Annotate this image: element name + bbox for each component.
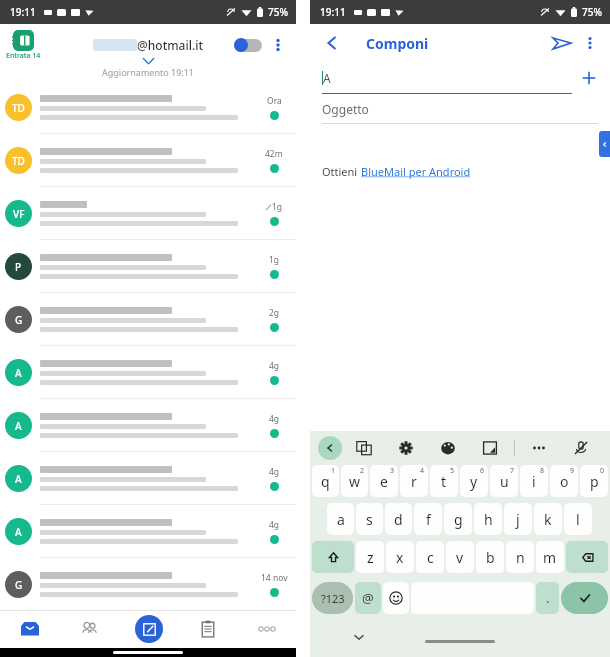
button[interactable]: Hide keyboard [352,630,366,644]
button[interactable]: Emoji [383,582,409,614]
button[interactable]: z [356,541,384,573]
button[interactable]: m [536,541,564,573]
staticText: 75% [268,5,288,19]
staticText: j [516,510,520,529]
staticText: Entrata 14 [6,51,41,61]
button[interactable]: @ [355,582,381,614]
staticText: f [426,510,431,529]
button[interactable]: Inbox [0,610,60,648]
button[interactable]: A [0,452,296,504]
button[interactable]: c [416,541,444,573]
staticText: A [15,366,22,380]
button[interactable]: G [0,293,296,345]
staticText: A [323,70,331,86]
button[interactable]: G [0,558,296,610]
staticText: 1g [272,201,283,213]
staticText: q [321,472,330,491]
button[interactable]: a [327,503,354,535]
button[interactable]: Tasks [178,610,237,648]
button[interactable]: Enter [561,582,608,614]
button[interactable]: h [474,503,502,535]
staticText: v [456,548,464,567]
button[interactable]: More options [270,37,286,53]
button[interactable]: Mute microphone [560,431,602,465]
button[interactable]: More options [582,35,598,51]
button[interactable]: o [550,465,578,497]
button[interactable]: A [0,505,296,557]
button[interactable]: A [0,399,296,451]
staticText: y [470,472,478,491]
staticText: . [546,589,550,607]
button[interactable]: v [446,541,474,573]
button[interactable]: Sticker [469,431,511,465]
staticText: 5 [450,466,455,476]
button[interactable]: . [536,582,559,614]
staticText: n [516,548,525,567]
staticText: Oggetto [322,101,369,117]
button[interactable]: Theme [427,431,469,465]
button[interactable]: x [386,541,414,573]
button[interactable]: Oggetto [310,94,610,124]
staticText: o [560,472,569,491]
button[interactable]: q [312,465,339,497]
staticText: 1 [331,466,336,476]
button[interactable]: TD [0,134,296,186]
staticText: 4g [269,413,280,425]
button[interactable]: Back [318,436,342,460]
button[interactable]: Compose [135,615,163,643]
button[interactable]: VF [0,187,296,239]
staticText: h [484,510,493,529]
button[interactable]: Add recipient [580,69,598,87]
button[interactable]: p [580,465,608,497]
button[interactable]: i [520,465,548,497]
staticText: P [15,260,22,274]
button[interactable]: Expand panel [599,131,610,157]
button[interactable]: Settings [385,431,427,465]
button[interactable]: Send [552,33,572,53]
button[interactable]: More [237,610,296,648]
button[interactable]: Back [324,35,340,51]
button[interactable]: Entrata [6,30,41,61]
button[interactable]: A [0,346,296,398]
staticText: i [532,472,536,491]
button[interactable]: TD [0,81,296,133]
button[interactable]: People [60,610,119,648]
button[interactable]: More [518,431,560,465]
button[interactable]: l [564,503,592,535]
button[interactable]: b [476,541,504,573]
button[interactable]: y [460,465,488,497]
staticText: 8 [540,466,545,476]
button[interactable]: r [400,465,428,497]
staticText: e [380,472,388,491]
button[interactable]: Translate [342,431,385,465]
staticText: a [337,510,345,529]
button[interactable]: u [490,465,518,497]
staticText: g [454,510,463,529]
button[interactable]: f [414,503,442,535]
staticText: @ [362,589,374,607]
button[interactable]: @hotmail.it [93,37,204,53]
button[interactable]: n [506,541,534,573]
staticText: 42m [265,148,283,160]
button[interactable]: t [430,465,458,497]
button[interactable]: ?123 [312,582,353,614]
button[interactable]: BlueMail per Android [361,164,471,179]
button[interactable]: Shift [312,541,354,573]
button[interactable]: Toggle focus [234,36,262,54]
staticText: 3 [390,466,395,476]
button[interactable]: s [356,503,383,535]
button[interactable]: j [504,503,532,535]
staticText: s [366,510,373,529]
staticText: Ora [267,95,282,107]
button[interactable]: w [341,465,368,497]
staticText: m [543,548,557,567]
button[interactable]: g [444,503,472,535]
button[interactable]: d [385,503,412,535]
button[interactable]: k [534,503,562,535]
button[interactable]: P [0,240,296,292]
staticText: l [576,510,580,529]
button[interactable]: Backspace [566,541,608,573]
staticText: 0 [600,466,605,476]
button[interactable]: e [370,465,398,497]
